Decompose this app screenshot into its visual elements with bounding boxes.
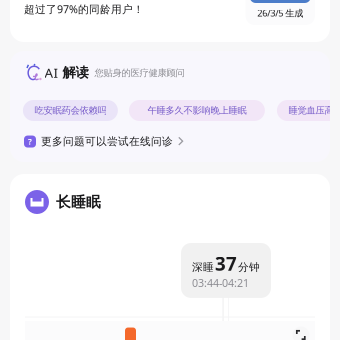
button[interactable]: 吃安眠药会依赖吗 xyxy=(23,100,118,121)
staticText: 吃安眠药会依赖吗 xyxy=(34,105,106,116)
staticText: 超过了97%的同龄用户！ xyxy=(24,2,144,16)
staticText: 您贴身的医疗健康顾问 xyxy=(88,67,184,79)
staticText: 睡觉血压高怎么办 xyxy=(288,105,340,116)
staticText: 03:44-04:21 xyxy=(192,276,249,290)
staticText: 更多问题可以尝试在线问诊 xyxy=(41,135,173,148)
button[interactable]: 午睡多久不影响晚上睡眠 xyxy=(129,100,265,121)
staticText: 37 xyxy=(215,251,237,276)
staticText: 26/3/5 生成 xyxy=(257,7,303,19)
staticText: 分钟 xyxy=(238,261,260,274)
button[interactable]: 睡觉血压高怎么办 xyxy=(277,100,340,121)
staticText: 解读 xyxy=(58,64,88,81)
button[interactable]: Expand chart xyxy=(291,325,311,340)
staticText: AI xyxy=(44,64,58,81)
staticText: 长睡眠 xyxy=(56,193,101,211)
staticText: 午睡多久不影响晚上睡眠 xyxy=(147,105,246,116)
staticText: 深睡 xyxy=(192,261,214,274)
staticText: ? xyxy=(28,136,32,147)
